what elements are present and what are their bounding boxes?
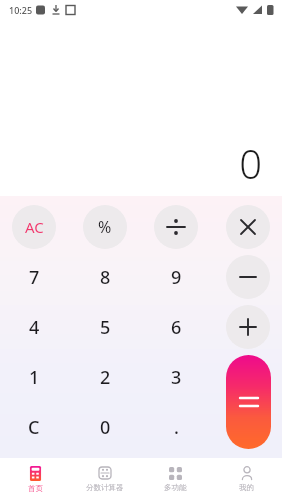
button[interactable]: 3 [154, 355, 198, 399]
staticText: 0 [100, 415, 111, 440]
button[interactable]: Divide [154, 205, 198, 249]
button[interactable]: 1 [12, 355, 56, 399]
button[interactable]: 4 [12, 305, 56, 349]
staticText: . [174, 415, 179, 440]
staticText: 3 [171, 365, 182, 390]
button[interactable]: Multiply [226, 205, 270, 249]
staticText: 4 [29, 315, 40, 340]
staticText: 0 [239, 136, 262, 190]
button[interactable]: 8 [83, 255, 127, 299]
button[interactable]: % [83, 205, 127, 249]
button[interactable]: 多功能 [140, 458, 211, 500]
button[interactable]: . [154, 405, 198, 449]
staticText: AC [25, 217, 44, 237]
staticText: 6 [171, 315, 182, 340]
button[interactable]: 2 [83, 355, 127, 399]
button[interactable]: 分数计算器 [70, 458, 140, 500]
staticText: 8 [100, 265, 111, 290]
button[interactable]: 5 [83, 305, 127, 349]
button[interactable]: 0 [83, 405, 127, 449]
staticText: 10:25 [9, 4, 33, 16]
staticText: 1 [29, 365, 40, 390]
staticText: C [28, 415, 40, 440]
button[interactable]: AC [12, 205, 56, 249]
staticText: 我的 [239, 483, 254, 492]
button[interactable]: Equals [226, 355, 271, 449]
staticText: 2 [100, 365, 111, 390]
staticText: 多功能 [164, 483, 187, 492]
staticText: 分数计算器 [86, 483, 124, 492]
staticText: % [98, 216, 112, 238]
staticText: 5 [100, 315, 111, 340]
button[interactable]: Minus [226, 255, 270, 299]
staticText: 9 [171, 265, 182, 290]
staticText: 首页 [28, 484, 43, 493]
button[interactable]: 我的 [211, 458, 282, 500]
button[interactable]: Plus [226, 305, 270, 349]
button[interactable]: 6 [154, 305, 198, 349]
button[interactable]: 7 [12, 255, 56, 299]
button[interactable]: 首页 [0, 458, 70, 500]
button[interactable]: 9 [154, 255, 198, 299]
staticText: 7 [29, 265, 40, 290]
button[interactable]: C [12, 405, 56, 449]
